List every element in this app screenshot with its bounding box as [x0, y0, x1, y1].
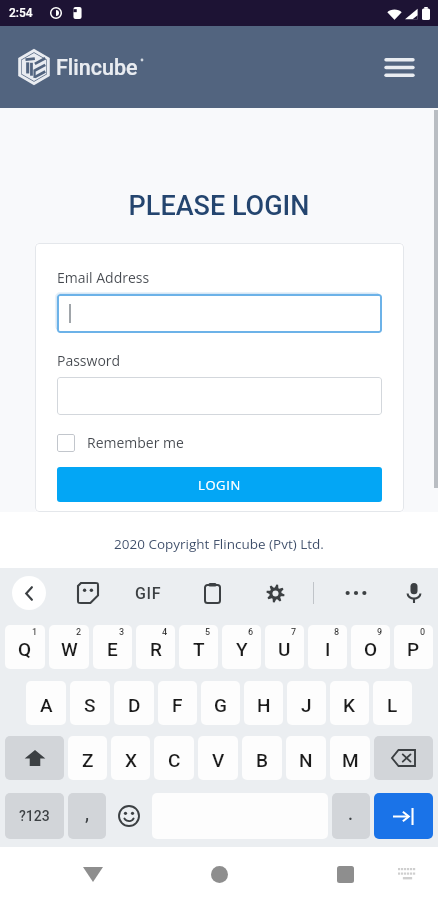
button[interactable]: W: [49, 625, 89, 669]
button[interactable]: Z: [68, 736, 107, 780]
staticText: 2020 Copyright Flincube (Pvt) Ltd.: [114, 535, 324, 553]
button[interactable]: M: [330, 736, 370, 780]
staticText: 4: [162, 627, 168, 638]
button[interactable]: F: [158, 681, 197, 725]
staticText: G: [214, 694, 227, 716]
staticText: 9: [377, 627, 383, 638]
button[interactable]: Home: [195, 850, 243, 898]
button[interactable]: Y: [222, 625, 261, 669]
staticText: GIF: [135, 584, 162, 603]
staticText: L: [387, 694, 398, 716]
staticText: J: [301, 694, 312, 716]
staticText: PLEASE LOGIN: [0, 190, 438, 222]
staticText: V: [212, 749, 225, 771]
staticText: Email Address: [57, 268, 150, 287]
button[interactable]: Backspace: [374, 736, 433, 780]
staticText: X: [125, 749, 137, 771]
button[interactable]: Q: [5, 625, 45, 669]
staticText: W: [61, 638, 78, 660]
button[interactable]: I: [308, 625, 347, 669]
button[interactable]: C: [154, 736, 194, 780]
staticText: 8: [334, 627, 340, 638]
staticText: F: [172, 694, 183, 716]
staticText: Z: [82, 749, 94, 771]
button[interactable]: Change keyboard: [383, 850, 431, 898]
button[interactable]: O: [351, 625, 390, 669]
button[interactable]: Clipboard: [196, 577, 228, 609]
button[interactable]: Keyboard settings: [259, 577, 291, 609]
staticText: 7: [291, 627, 297, 638]
button[interactable]: ?123: [5, 793, 64, 839]
staticText: Q: [18, 638, 32, 660]
button[interactable]: LOGIN: [57, 467, 382, 502]
button[interactable]: Open navigation menu: [380, 48, 418, 86]
button[interactable]: X: [111, 736, 150, 780]
staticText: ?123: [19, 808, 50, 824]
staticText: 1: [32, 627, 38, 638]
staticText: C: [168, 749, 181, 771]
button[interactable]: B: [242, 736, 282, 780]
staticText: LOGIN: [198, 476, 241, 494]
staticText: 2:54: [9, 6, 33, 20]
button[interactable]: Password field: [57, 377, 382, 415]
staticText: Flincube: [56, 55, 138, 80]
staticText: B: [256, 749, 268, 771]
button[interactable]: S: [70, 681, 110, 725]
staticText: P: [407, 638, 420, 660]
button[interactable]: Back: [69, 850, 117, 898]
button[interactable]: Recent apps: [321, 850, 369, 898]
button[interactable]: U: [265, 625, 304, 669]
staticText: Remember me: [87, 433, 184, 452]
staticText: S: [84, 694, 96, 716]
button[interactable]: R: [136, 625, 175, 669]
button[interactable]: H: [244, 681, 283, 725]
button[interactable]: T: [179, 625, 218, 669]
staticText: 3: [119, 627, 125, 638]
staticText: .: [348, 803, 354, 824]
button[interactable]: Back: [12, 576, 46, 610]
button[interactable]: G: [201, 681, 240, 725]
staticText: D: [128, 694, 141, 716]
staticText: I: [325, 638, 331, 660]
staticText: A: [40, 694, 53, 716]
staticText: 5: [205, 627, 211, 638]
button[interactable]: Next field: [374, 793, 433, 839]
button[interactable]: .: [332, 793, 370, 839]
staticText: U: [278, 638, 291, 660]
staticText: Y: [236, 638, 248, 660]
staticText: H: [257, 694, 271, 716]
staticText: K: [343, 694, 356, 716]
button[interactable]: K: [330, 681, 369, 725]
staticText: O: [364, 638, 378, 660]
staticText: 0: [420, 627, 426, 638]
staticText: 2: [76, 627, 82, 638]
staticText: T: [193, 638, 205, 660]
button[interactable]: P: [394, 625, 433, 669]
button[interactable]: More options: [340, 577, 372, 609]
button[interactable]: D: [114, 681, 154, 725]
staticText: 6: [248, 627, 254, 638]
button[interactable]: ,: [68, 793, 106, 839]
button[interactable]: Email Address field: [57, 294, 382, 333]
button[interactable]: Shift: [5, 736, 64, 780]
button[interactable]: V: [198, 736, 238, 780]
button[interactable]: Voice input: [398, 577, 430, 609]
button[interactable]: GIF: [128, 573, 168, 613]
button[interactable]: E: [93, 625, 132, 669]
button[interactable]: N: [286, 736, 326, 780]
staticText: ,: [85, 803, 90, 824]
staticText: R: [150, 638, 162, 660]
staticText: N: [299, 749, 313, 771]
button[interactable]: Stickers: [72, 577, 104, 609]
button[interactable]: J: [287, 681, 326, 725]
button[interactable]: L: [373, 681, 412, 725]
staticText: M: [342, 749, 359, 771]
staticText: E: [107, 638, 118, 660]
button[interactable]: Emoji: [110, 793, 148, 839]
button[interactable]: Remember me: [57, 433, 184, 452]
staticText: Password: [57, 351, 121, 370]
button[interactable]: A: [26, 681, 66, 725]
